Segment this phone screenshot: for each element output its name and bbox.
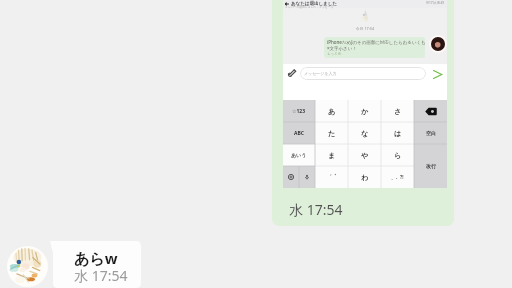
staticText: か bbox=[361, 107, 369, 116]
button[interactable]: Backspace bbox=[414, 100, 447, 122]
staticText: iPhoneだめJのその画面に対応したらわるいくも bbox=[327, 39, 425, 45]
staticText: あいう bbox=[291, 152, 307, 158]
staticText: や bbox=[361, 151, 369, 160]
button[interactable]: Profile picture bbox=[7, 246, 48, 287]
button[interactable]: た bbox=[315, 122, 348, 144]
staticText: ら bbox=[394, 151, 402, 160]
button[interactable]: ☆123 bbox=[283, 100, 315, 122]
button[interactable]: Back bbox=[283, 0, 447, 8]
staticText: 、。?! bbox=[391, 174, 404, 180]
staticText: ABC bbox=[294, 130, 304, 137]
staticText: もっと先 bbox=[327, 52, 342, 56]
staticText: 水 17:54 bbox=[289, 200, 343, 219]
staticText: 水 17:54 bbox=[74, 266, 128, 285]
staticText: ま bbox=[328, 151, 336, 160]
staticText: あ bbox=[328, 107, 336, 116]
button[interactable]: メッセージを入力 bbox=[300, 67, 426, 80]
staticText: 改行 bbox=[426, 163, 436, 169]
staticText: あらw bbox=[74, 248, 118, 268]
staticText: 空白 bbox=[426, 130, 436, 136]
button[interactable]: iPhoneだめJのその画面に対応したらわるいくも bbox=[324, 37, 425, 58]
other: Back bbox=[285, 2, 289, 6]
staticText: な bbox=[361, 129, 369, 138]
button[interactable]: は bbox=[381, 122, 414, 144]
button[interactable]: ゛゜ bbox=[315, 166, 348, 188]
button[interactable]: ま bbox=[315, 144, 348, 166]
button[interactable]: Back bbox=[272, 0, 454, 226]
staticText: さ bbox=[394, 107, 402, 116]
button[interactable]: わ bbox=[348, 166, 381, 188]
staticText: た bbox=[328, 129, 336, 138]
staticText: ☆123 bbox=[292, 108, 306, 115]
staticText: 9/17(火)8:49 bbox=[426, 1, 445, 5]
button[interactable]: ABC bbox=[283, 122, 315, 144]
button[interactable]: や bbox=[348, 144, 381, 166]
button[interactable]: Language bbox=[283, 166, 299, 188]
staticText: メッセージを入力 bbox=[304, 71, 337, 76]
button[interactable]: あ bbox=[315, 100, 348, 122]
button[interactable]: か bbox=[348, 100, 381, 122]
staticText: 今日 17:54 bbox=[283, 26, 447, 31]
staticText: メンバーが退出しました・メッセージ bbox=[285, 5, 334, 9]
button[interactable]: 空白 bbox=[414, 122, 447, 144]
staticText: あなたは退出しました bbox=[291, 1, 337, 7]
button[interactable]: Sender avatar bbox=[429, 35, 447, 53]
button[interactable]: Voice input bbox=[299, 166, 315, 188]
button[interactable]: あらw bbox=[50, 241, 141, 288]
button[interactable]: Send bbox=[432, 69, 443, 80]
staticText: ×文字小さい！ bbox=[327, 45, 357, 51]
button[interactable]: 改行 bbox=[414, 144, 447, 188]
button[interactable]: さ bbox=[381, 100, 414, 122]
staticText: は bbox=[394, 129, 402, 138]
staticText: ゛゜ bbox=[327, 174, 337, 180]
button[interactable]: あいう bbox=[283, 144, 315, 166]
button[interactable]: Attach bbox=[287, 68, 296, 77]
button[interactable]: 、。?! bbox=[381, 166, 414, 188]
staticText: わ bbox=[361, 173, 369, 182]
button[interactable]: ら bbox=[381, 144, 414, 166]
button[interactable]: な bbox=[348, 122, 381, 144]
